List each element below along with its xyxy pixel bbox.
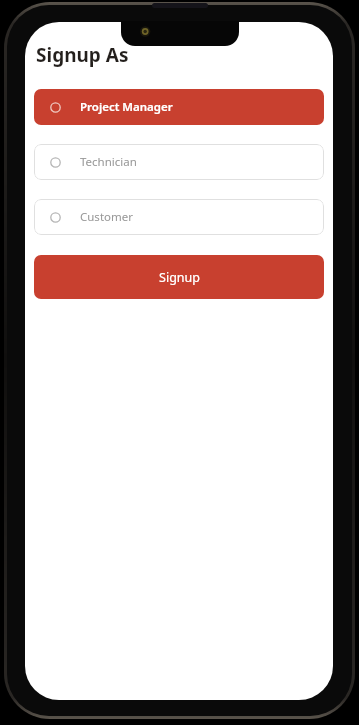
button[interactable]: Select Project Manager bbox=[34, 89, 324, 125]
button[interactable]: Select Technician bbox=[34, 144, 324, 180]
staticText: Signup bbox=[159, 269, 200, 286]
other: Select Project Manager bbox=[50, 102, 61, 113]
staticText: Signup As bbox=[36, 42, 129, 68]
other: Select Customer bbox=[50, 212, 61, 223]
staticText: Technician bbox=[80, 154, 137, 170]
other: Select Technician bbox=[50, 157, 61, 168]
button[interactable]: Select Customer bbox=[34, 199, 324, 235]
staticText: Project Manager bbox=[80, 99, 173, 115]
button[interactable]: Signup bbox=[34, 255, 324, 299]
staticText: Customer bbox=[80, 209, 133, 225]
